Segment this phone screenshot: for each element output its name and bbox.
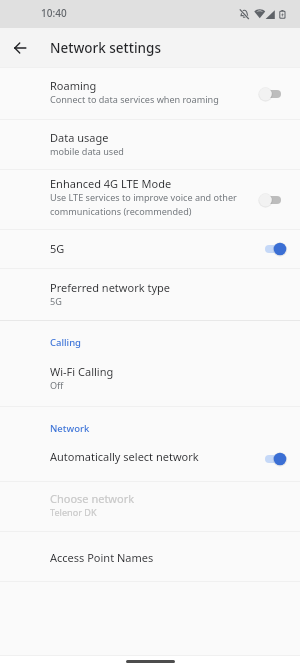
staticText: Data usage	[50, 130, 109, 145]
staticText: Wi-Fi Calling	[50, 364, 114, 379]
button[interactable]: Enhanced 4G LTE Mode	[0, 170, 300, 229]
staticText: 10:40	[41, 6, 67, 20]
button[interactable]: Back	[0, 28, 40, 67]
button[interactable]: Preferred network type	[0, 269, 300, 320]
button[interactable]: Roaming	[0, 68, 300, 119]
staticText: Roaming	[50, 78, 97, 93]
staticText: Network	[50, 422, 90, 435]
staticText: Enhanced 4G LTE Mode	[50, 176, 172, 191]
staticText: Automatically select network	[50, 449, 199, 464]
staticText: 5G	[50, 241, 65, 256]
button[interactable]: Data usage	[0, 120, 300, 169]
staticText: Choose network	[50, 491, 135, 506]
staticText: Connect to data services when roaming	[50, 93, 219, 105]
staticText: Preferred network type	[50, 280, 170, 295]
button[interactable]: Wi-Fi Calling	[0, 351, 300, 406]
staticText: Telenor DK	[50, 506, 97, 518]
staticText: 5G	[50, 295, 62, 307]
staticText: Off	[50, 379, 64, 391]
button[interactable]: Automatically select network	[0, 437, 300, 481]
staticText: Network settings	[50, 39, 161, 57]
staticText: mobile data used	[50, 145, 124, 157]
staticText: Access Point Names	[50, 550, 154, 565]
button[interactable]: Access Point Names	[0, 532, 300, 581]
button[interactable]: Choose network	[0, 482, 300, 531]
staticText: Calling	[50, 336, 82, 349]
staticText: Use LTE services to improve voice and ot…	[50, 191, 243, 218]
button[interactable]: 5G	[0, 230, 300, 268]
